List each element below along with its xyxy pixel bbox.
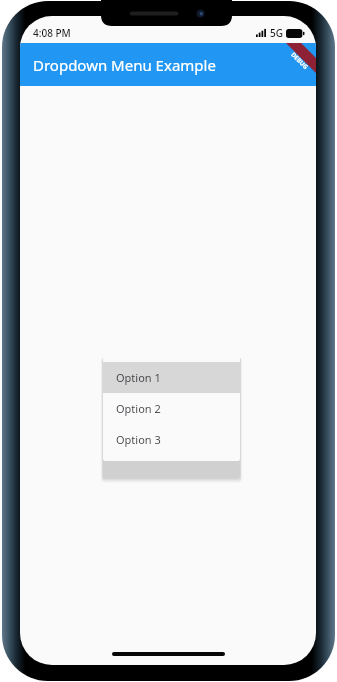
- staticText: 5G: [270, 26, 283, 40]
- button[interactable]: Option 2: [103, 393, 240, 424]
- staticText: 4:08 PM: [33, 26, 71, 40]
- staticText: Option 2: [116, 401, 161, 416]
- staticText: Option 1: [116, 370, 161, 385]
- staticText: Option 3: [116, 432, 161, 447]
- staticText: DEBUG: [289, 51, 310, 71]
- staticText: Dropdown Menu Example: [33, 55, 216, 75]
- button[interactable]: Option 3: [103, 424, 240, 455]
- button[interactable]: Option 1: [103, 362, 240, 393]
